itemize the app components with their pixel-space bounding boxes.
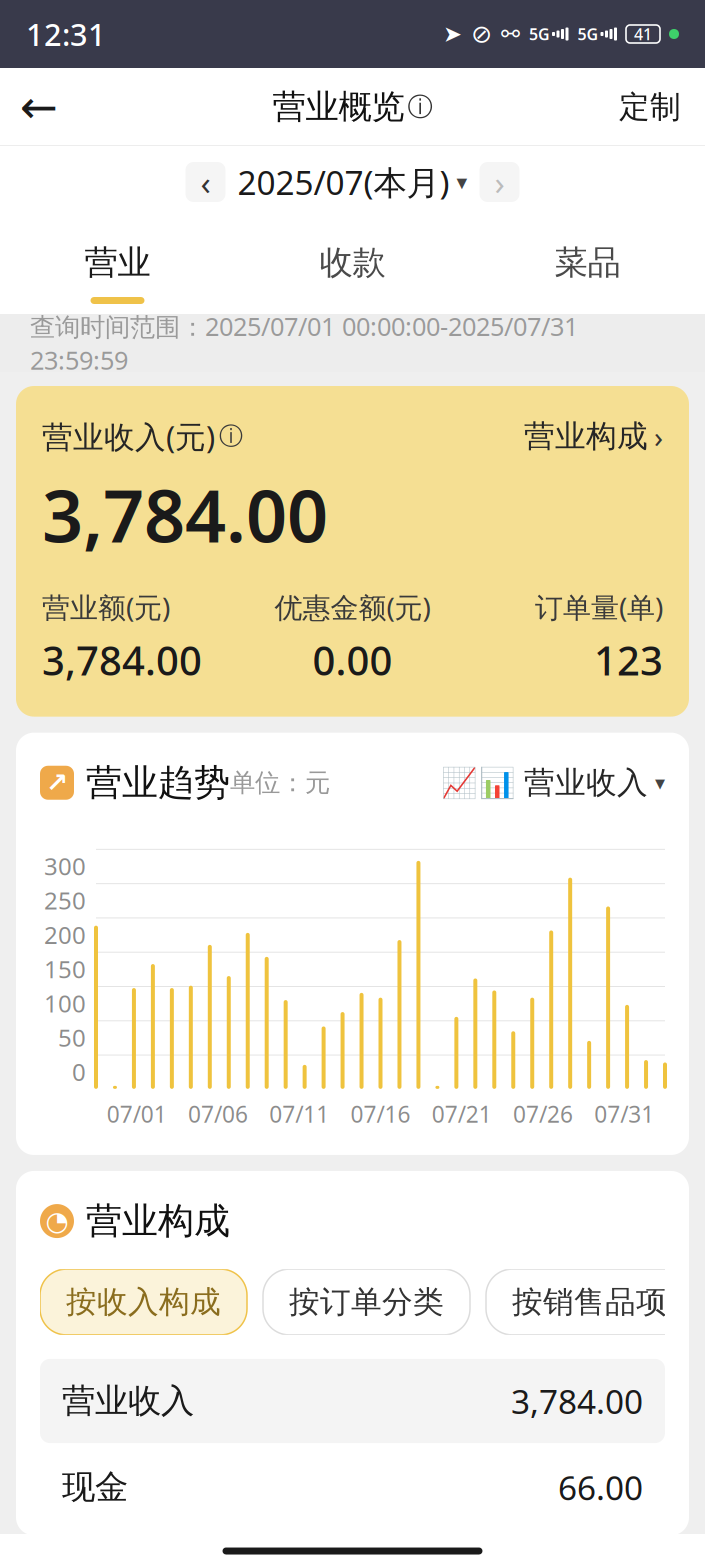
button[interactable]: 营业: [0, 218, 235, 314]
staticText: 营业收入: [524, 764, 648, 802]
button[interactable]: 营业收入: [524, 764, 665, 802]
staticText: 定制: [619, 88, 681, 126]
staticText: 12:31: [26, 14, 106, 54]
staticText: 按销售品项: [512, 1283, 667, 1321]
staticText: 2025/07(本月): [237, 160, 449, 204]
staticText: ⓘ: [219, 422, 243, 451]
staticText: 66.00: [558, 1465, 643, 1509]
staticText: ⚯: [501, 21, 520, 47]
button[interactable]: 定制: [581, 71, 705, 143]
staticText: 50: [58, 1021, 86, 1053]
button[interactable]: 营业构成: [524, 417, 663, 456]
staticText: 按订单分类: [289, 1283, 444, 1321]
staticText: 07/21: [432, 1099, 492, 1129]
staticText: ➤: [443, 21, 462, 47]
staticText: 优惠金额(元): [274, 588, 430, 625]
staticText: 📊: [478, 766, 515, 799]
button[interactable]: 按收入构成: [40, 1269, 247, 1335]
button[interactable]: 下一月: [479, 162, 519, 202]
button[interactable]: 折线图: [440, 764, 478, 802]
staticText: 单位：元: [230, 767, 330, 798]
button[interactable]: 按销售品项: [486, 1269, 693, 1335]
staticText: ›: [654, 417, 663, 456]
staticText: 5G: [577, 23, 598, 45]
staticText: 250: [44, 884, 86, 916]
staticText: 100: [44, 987, 86, 1019]
staticText: ▾: [655, 771, 665, 794]
staticText: 按收入构成: [66, 1283, 221, 1321]
staticText: 营业收入: [62, 1380, 194, 1421]
button[interactable]: 菜品: [470, 218, 705, 314]
staticText: 菜品: [554, 242, 620, 283]
staticText: 收款: [319, 242, 385, 283]
staticText: 07/26: [513, 1099, 573, 1129]
staticText: ←: [20, 81, 58, 133]
staticText: ›: [494, 160, 504, 204]
staticText: 150: [44, 953, 86, 985]
staticText: 订单量(单): [535, 588, 663, 625]
staticText: 07/31: [594, 1099, 654, 1129]
staticText: 查询时间范围：2025/07/01 00:00:00-2025/07/31 23…: [30, 309, 578, 377]
staticText: 41: [634, 23, 652, 45]
staticText: 3,784.00: [42, 633, 202, 687]
staticText: 07/11: [269, 1099, 329, 1129]
staticText: 营业构成: [86, 1199, 230, 1243]
staticText: ◔: [45, 1206, 68, 1236]
button[interactable]: 柱状图: [478, 764, 516, 802]
staticText: 07/06: [188, 1099, 248, 1129]
staticText: 营业构成: [524, 417, 648, 455]
staticText: 0.00: [312, 633, 392, 687]
button[interactable]: 按订单分类: [263, 1269, 470, 1335]
button[interactable]: 收款: [235, 218, 470, 314]
staticText: ▾: [456, 170, 467, 194]
staticText: 0: [72, 1056, 86, 1088]
staticText: 营业额(元): [42, 588, 170, 625]
staticText: 300: [44, 850, 86, 882]
staticText: 营业: [84, 242, 150, 283]
staticText: 营业收入(元): [42, 416, 215, 457]
button[interactable]: 2025/07(本月): [237, 160, 467, 204]
staticText: ⓘ: [407, 91, 432, 122]
staticText: 营业趋势: [86, 761, 230, 805]
button[interactable]: 上一月: [185, 162, 225, 202]
staticText: 07/01: [107, 1099, 167, 1129]
staticText: ⊘: [471, 20, 492, 48]
staticText: 5G: [529, 23, 550, 45]
staticText: 07/16: [350, 1099, 410, 1129]
staticText: 📈: [440, 766, 477, 799]
staticText: 123: [594, 633, 663, 687]
staticText: 3,784.00: [42, 467, 328, 562]
staticText: 200: [44, 919, 86, 950]
staticText: ↗: [46, 768, 68, 798]
staticText: ‹: [200, 160, 210, 204]
button[interactable]: 返回: [0, 71, 78, 143]
staticText: 营业概览: [272, 86, 404, 127]
staticText: 现金: [62, 1467, 128, 1508]
staticText: 3,784.00: [511, 1379, 643, 1423]
